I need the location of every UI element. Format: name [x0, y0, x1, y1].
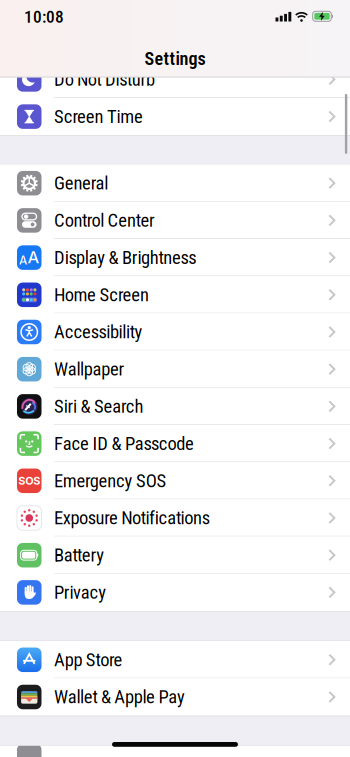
button[interactable]: Exposure Notifications — [0, 499, 350, 537]
staticText: Wallpaper — [54, 358, 125, 380]
button[interactable]: Siri & Search — [0, 388, 350, 425]
button[interactable]: SOS — [0, 462, 350, 499]
staticText: Privacy — [54, 581, 106, 603]
staticText: A — [19, 253, 27, 267]
staticText: Battery — [54, 544, 104, 566]
button[interactable]: Screen Time — [0, 98, 350, 135]
button[interactable]: Control Center — [0, 202, 350, 239]
staticText: Face ID & Passcode — [54, 433, 194, 454]
button[interactable]: Home Screen — [0, 276, 350, 313]
staticText: Exposure Notifications — [54, 507, 210, 529]
staticText: Settings — [144, 48, 205, 69]
button[interactable]: Do Not Disturb — [0, 61, 350, 98]
button[interactable]: Accessibility — [0, 313, 350, 351]
staticText: 10:08 — [24, 7, 64, 27]
button[interactable]: Passwords & Accounts — [0, 746, 350, 757]
button[interactable]: A — [0, 239, 350, 276]
staticText: SOS — [18, 474, 40, 487]
staticText: Siri & Search — [54, 395, 143, 417]
button[interactable]: Face ID & Passcode — [0, 425, 350, 462]
button[interactable]: Battery — [0, 537, 350, 574]
button[interactable]: App Store — [0, 641, 350, 678]
staticText: Home Screen — [54, 284, 149, 306]
staticText: Screen Time — [54, 106, 143, 127]
button[interactable]: Wallpaper — [0, 351, 350, 388]
staticText: Control Center — [54, 209, 155, 231]
button[interactable]: Wallet & Apple Pay — [0, 678, 350, 716]
staticText: Display & Brightness — [54, 247, 196, 268]
staticText: App Store — [54, 649, 123, 671]
staticText: Do Not Disturb — [54, 68, 155, 90]
staticText: General — [54, 172, 108, 194]
staticText: Accessibility — [54, 321, 142, 343]
button[interactable]: Privacy — [0, 574, 350, 611]
staticText: Emergency SOS — [54, 470, 166, 492]
button[interactable]: General — [0, 165, 350, 202]
staticText: Wallet & Apple Pay — [54, 686, 185, 708]
staticText: A — [27, 247, 39, 267]
